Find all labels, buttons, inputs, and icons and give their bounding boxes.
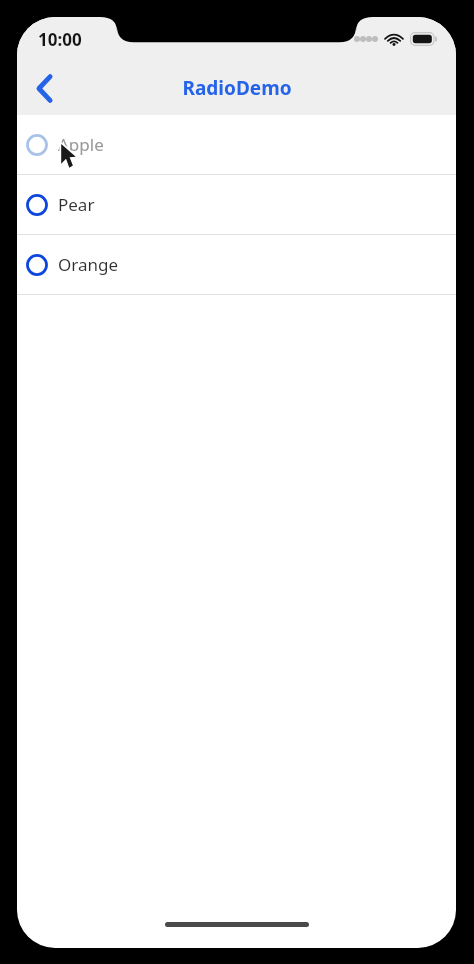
button[interactable]: Apple bbox=[17, 115, 456, 174]
staticText: Pear bbox=[58, 193, 95, 216]
button[interactable]: Orange bbox=[17, 235, 456, 294]
staticText: Apple bbox=[58, 133, 104, 156]
staticText: Orange bbox=[58, 253, 119, 276]
staticText: 10:00 bbox=[38, 28, 82, 51]
button[interactable]: Pear bbox=[17, 175, 456, 234]
button[interactable]: Back bbox=[23, 66, 67, 110]
staticText: RadioDemo bbox=[182, 75, 292, 101]
